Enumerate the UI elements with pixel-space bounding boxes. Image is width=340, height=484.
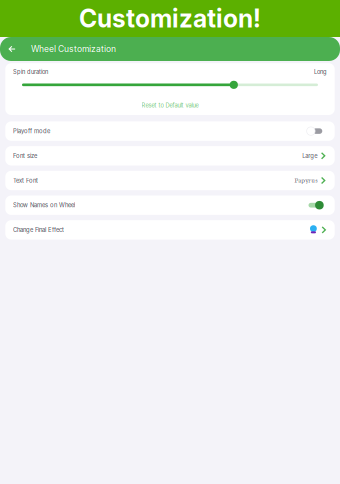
- button[interactable]: Text Font: [5, 171, 335, 190]
- button[interactable]: Font size: [5, 146, 335, 165]
- staticText: Font size: [13, 152, 37, 159]
- staticText: Text Font: [13, 177, 38, 184]
- button[interactable]: Playoff mode: [5, 121, 335, 141]
- staticText: Show Names on Wheel: [13, 202, 75, 209]
- staticText: Wheel Customization: [31, 44, 116, 54]
- staticText: Papyrus: [294, 176, 317, 185]
- button[interactable]: Change Final Effect: [5, 220, 335, 240]
- staticText: Large: [302, 152, 317, 159]
- staticText: Change Final Effect: [13, 226, 64, 233]
- staticText: Spin duration: [13, 68, 48, 75]
- staticText: Reset to Default value: [141, 102, 198, 109]
- button[interactable]: Reset to Default value: [5, 98, 335, 113]
- staticText: Long: [314, 68, 327, 75]
- button[interactable]: Show Names on Wheel: [5, 195, 335, 215]
- staticText: Playoff mode: [13, 128, 50, 135]
- staticText: Customization!: [79, 4, 261, 33]
- button[interactable]: Back: [0, 37, 31, 61]
